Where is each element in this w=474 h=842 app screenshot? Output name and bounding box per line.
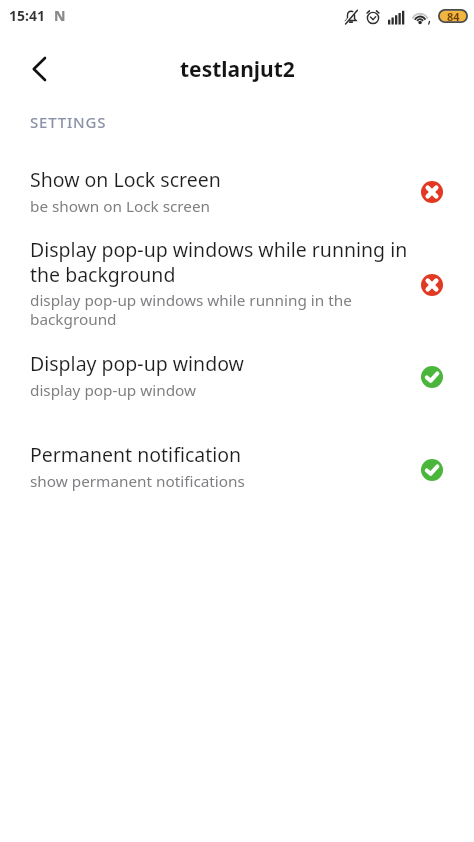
button[interactable] <box>26 56 52 82</box>
button[interactable]: Permanent notification <box>0 441 474 492</box>
staticText: SETTINGS <box>30 112 107 132</box>
staticText: Permanent notification <box>30 441 242 468</box>
button[interactable]: Display pop-up window <box>0 350 474 401</box>
staticText: display pop-up windows while running in … <box>30 290 352 329</box>
staticText: 15:41 <box>9 6 45 25</box>
staticText: display pop-up window <box>30 380 197 401</box>
staticText: Display pop-up windows while running in … <box>30 236 408 287</box>
staticText: be shown on Lock screen <box>30 196 211 217</box>
button[interactable]: Display pop-up windows while running in … <box>0 236 474 329</box>
staticText: Display pop-up window <box>30 350 244 377</box>
staticText: Show on Lock screen <box>30 166 221 193</box>
staticText: show permanent notifications <box>30 471 245 492</box>
staticText: testlanjut2 <box>180 55 295 84</box>
staticText: 84 <box>447 9 460 23</box>
button[interactable]: Show on Lock screen <box>0 166 474 217</box>
staticText: N <box>54 6 66 25</box>
